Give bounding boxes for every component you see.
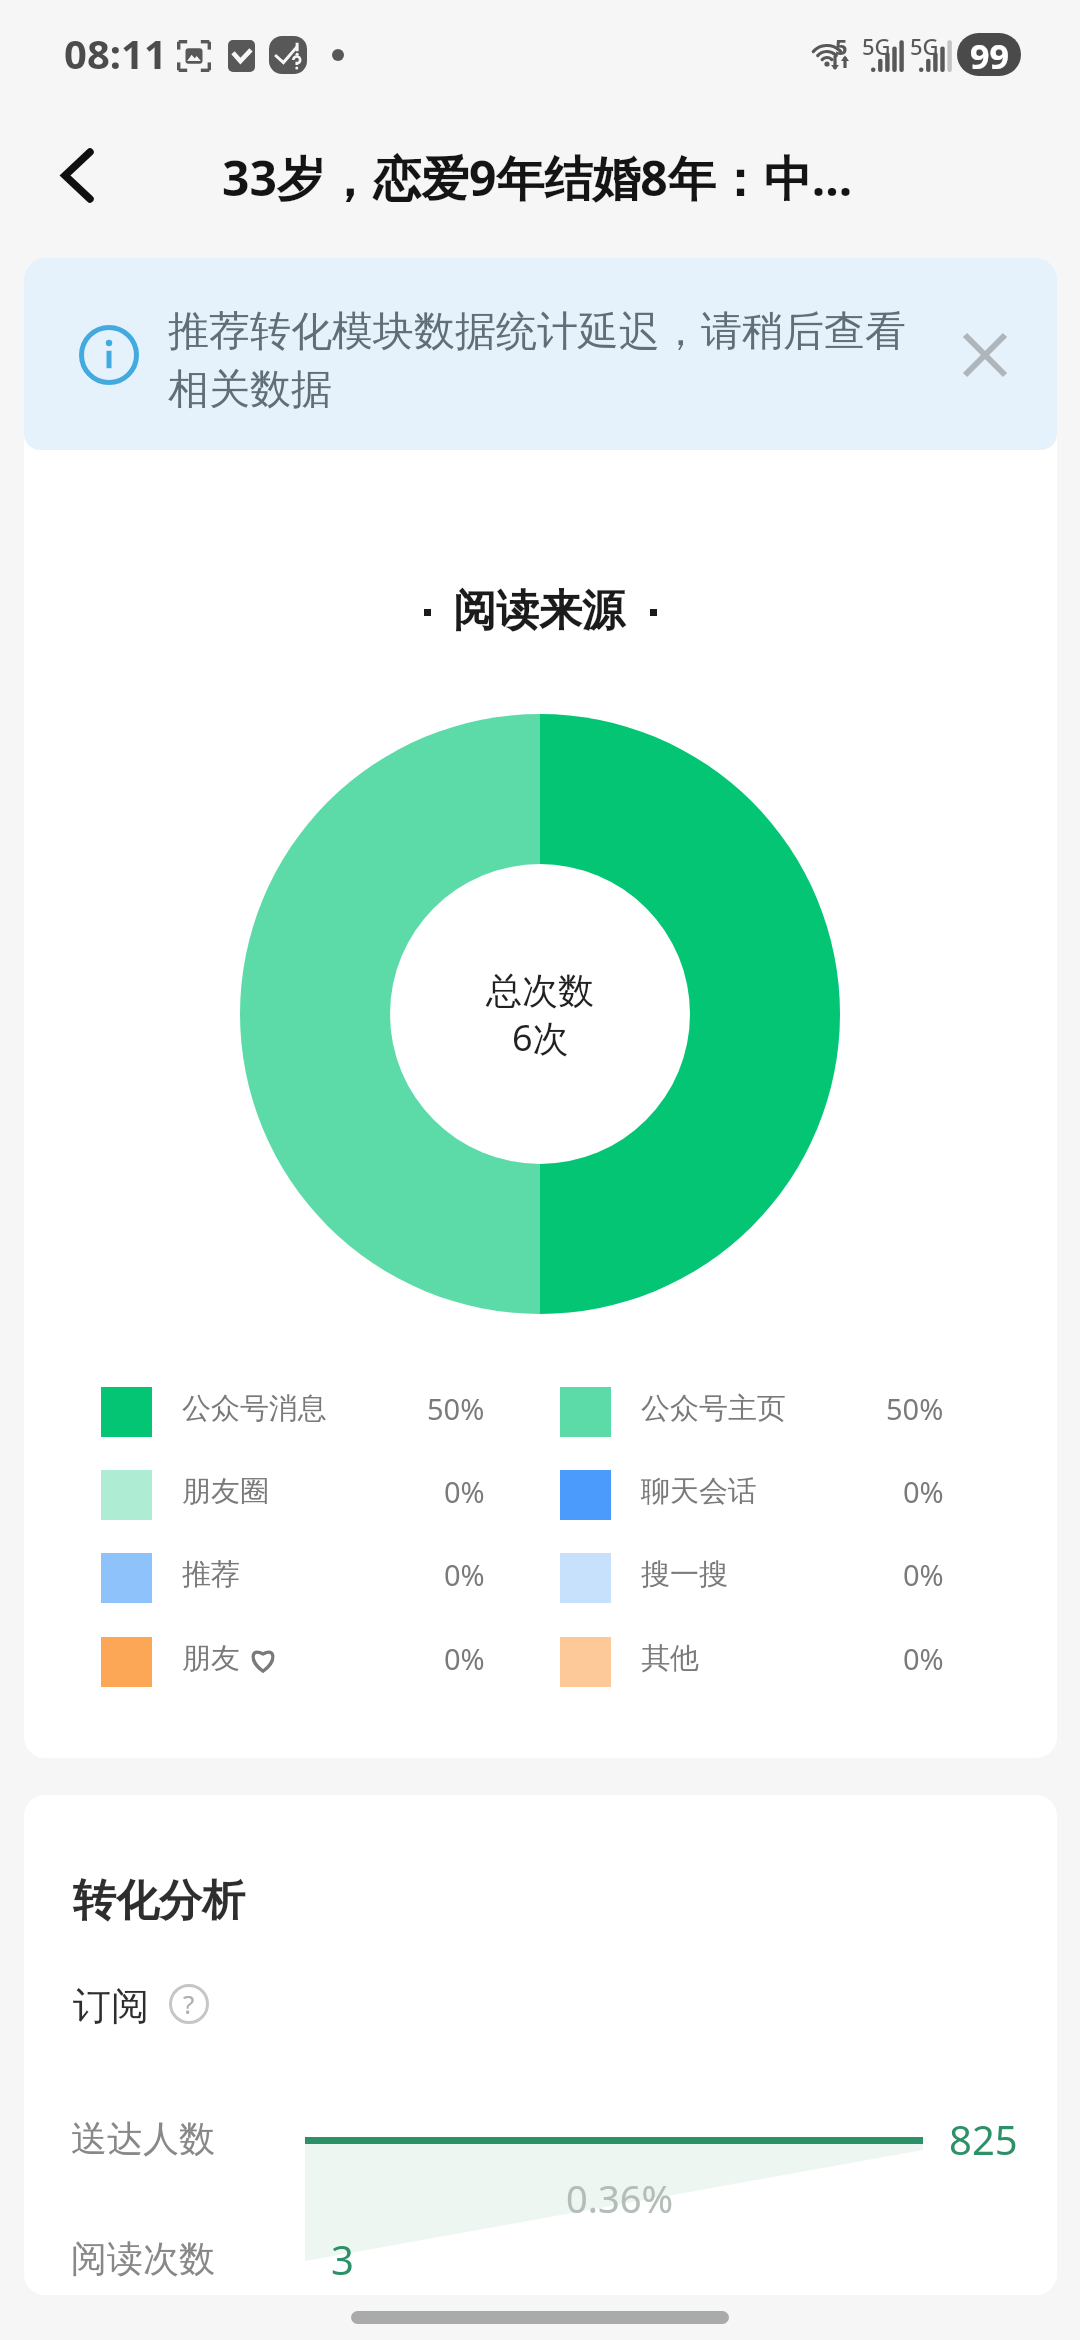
staticText: 阅读来源 bbox=[453, 584, 625, 638]
staticText: ? bbox=[183, 1986, 195, 2021]
staticText: 订阅 bbox=[73, 1982, 149, 2030]
staticText: 0.36% bbox=[566, 2172, 673, 2224]
button[interactable]: 搜一搜 bbox=[560, 1553, 964, 1603]
staticText: 6次 bbox=[512, 1013, 569, 1062]
staticText: 0% bbox=[903, 1639, 944, 1678]
staticText: 推荐 bbox=[182, 1556, 240, 1593]
staticText: 搜一搜 bbox=[641, 1556, 728, 1593]
button[interactable]: 返回 bbox=[36, 134, 118, 216]
staticText: 33岁，恋爱9年结婚8年：中... bbox=[222, 145, 853, 211]
button[interactable]: 公众号主页 bbox=[560, 1387, 964, 1437]
button[interactable]: 朋友圈 bbox=[101, 1470, 505, 1520]
staticText: 50% bbox=[427, 1389, 485, 1428]
staticText: 公众号主页 bbox=[641, 1390, 786, 1427]
staticText: 825 bbox=[949, 2112, 1018, 2166]
button[interactable]: 关闭 bbox=[945, 315, 1025, 395]
staticText: 5G bbox=[862, 31, 891, 61]
button[interactable]: 帮助 bbox=[169, 1984, 209, 2024]
button[interactable]: 其他 bbox=[560, 1637, 964, 1687]
staticText: 聊天会话 bbox=[641, 1473, 757, 1510]
staticText: 阅读次数 bbox=[71, 2236, 215, 2281]
staticText: 转化分析 bbox=[73, 1874, 245, 1928]
button[interactable]: 聊天会话 bbox=[560, 1470, 964, 1520]
staticText: 朋友圈 bbox=[182, 1473, 269, 1510]
button[interactable]: 公众号消息 bbox=[101, 1387, 505, 1437]
staticText: 3 bbox=[331, 2232, 354, 2286]
staticText: 5G bbox=[910, 31, 939, 61]
staticText: 公众号消息 bbox=[182, 1390, 327, 1427]
button[interactable]: 推荐 bbox=[101, 1553, 505, 1603]
staticText: 朋友 bbox=[182, 1640, 240, 1677]
staticText: 0% bbox=[444, 1472, 485, 1511]
staticText: 总次数 bbox=[486, 968, 594, 1013]
staticText: 0% bbox=[903, 1555, 944, 1594]
staticText: 推荐转化模块数据统计延迟，请稍后查看相关数据 bbox=[168, 306, 908, 415]
staticText: 0% bbox=[444, 1555, 485, 1594]
staticText: 08:11 bbox=[64, 26, 167, 80]
staticText: 0% bbox=[444, 1639, 485, 1678]
staticText: 99 bbox=[970, 33, 1009, 76]
button[interactable]: 朋友 bbox=[101, 1637, 505, 1687]
staticText: 0% bbox=[903, 1472, 944, 1511]
staticText: 50% bbox=[886, 1389, 944, 1428]
staticText: 5 bbox=[835, 31, 848, 61]
staticText: 送达人数 bbox=[71, 2116, 215, 2161]
staticText: 其他 bbox=[641, 1640, 699, 1677]
